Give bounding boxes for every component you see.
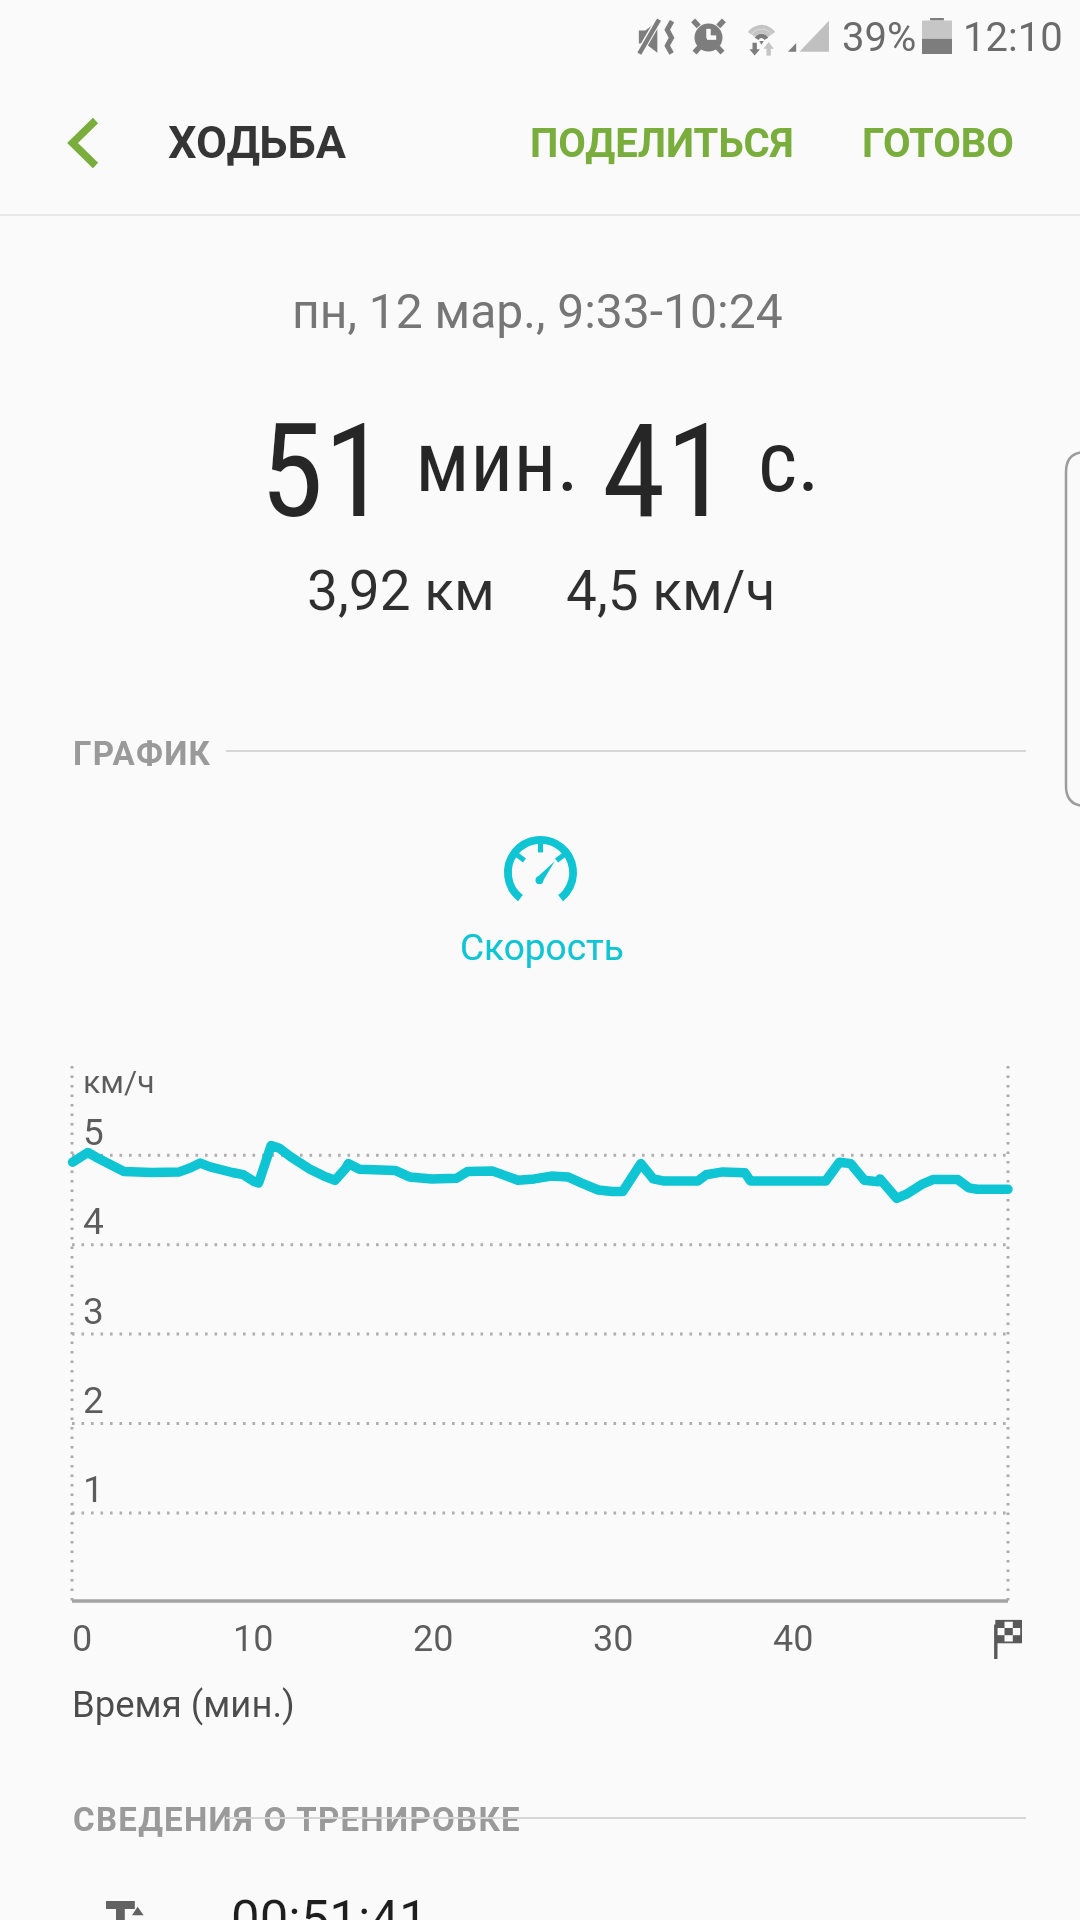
staticText: с. <box>758 412 820 512</box>
staticText: СВЕДЕНИЯ О ТРЕНИРОВКЕ <box>73 1800 521 1839</box>
staticText: ГРАФИК <box>73 734 212 773</box>
staticText: 41 <box>602 396 730 547</box>
staticText: Скорость <box>460 926 624 969</box>
button[interactable]: ГОТОВО <box>846 84 1072 203</box>
staticText: 2 <box>83 1379 104 1422</box>
staticText: 20 <box>413 1618 454 1660</box>
staticText: 4,5 км/ч <box>566 559 776 623</box>
staticText: ХОДЬБА <box>168 116 347 169</box>
staticText: ГОТОВО <box>862 120 1014 167</box>
staticText: 1 <box>83 1468 104 1511</box>
staticText: 00:51:41 <box>231 1890 428 1920</box>
staticText: мин. <box>415 412 579 512</box>
staticText: 3 <box>83 1290 104 1333</box>
staticText: ПОДЕЛИТЬСЯ <box>530 120 794 167</box>
staticText: 40 <box>773 1618 814 1660</box>
staticText: 51 <box>260 396 388 547</box>
button[interactable]: ПОДЕЛИТЬСЯ <box>514 84 810 203</box>
staticText: 4 <box>83 1200 104 1243</box>
staticText: 10 <box>233 1618 274 1660</box>
staticText: Время (мин.) <box>72 1683 295 1726</box>
staticText: 12:10 <box>963 14 1063 61</box>
button[interactable]: Назад <box>16 72 152 214</box>
staticText: 5 <box>83 1111 104 1154</box>
staticText: 30 <box>593 1618 634 1660</box>
staticText: 39% <box>842 14 917 61</box>
staticText: 3,92 км <box>307 559 495 623</box>
staticText: пн, 12 мар., 9:33-10:24 <box>292 283 783 339</box>
staticText: 0 <box>72 1618 93 1660</box>
staticText: км/ч <box>83 1063 155 1101</box>
